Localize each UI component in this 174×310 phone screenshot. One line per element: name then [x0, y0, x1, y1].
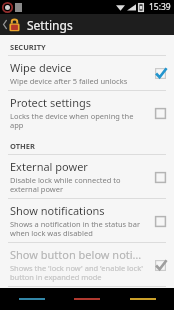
staticText: Shows the 'lock now' and 'enable lock' b… [10, 263, 146, 282]
staticText: Show notifications [10, 203, 105, 218]
staticText: Settings [27, 17, 73, 33]
button[interactable]: Protect settings [0, 91, 174, 134]
button[interactable]: Checked [151, 64, 169, 82]
staticText: Show button below notification [10, 247, 146, 262]
staticText: SECURITY [10, 42, 46, 52]
button[interactable]: External power [0, 155, 174, 198]
button[interactable]: Show button below notification [0, 243, 174, 286]
staticText: Locks the device when opening the app [10, 111, 146, 130]
button[interactable]: Navigate up [0, 14, 22, 35]
staticText: Wipe device after 5 failed unlocks [10, 76, 128, 86]
button[interactable]: Unchecked [151, 212, 169, 230]
staticText: External power [10, 159, 88, 174]
button[interactable]: Show notifications [0, 199, 174, 242]
staticText: Shows a notification in the status bar w… [10, 219, 146, 238]
staticText: OTHER [10, 141, 35, 151]
staticText: Wipe device [10, 60, 72, 75]
button[interactable]: Tab 2 [63, 289, 111, 309]
button[interactable]: Tab 1 [8, 289, 56, 309]
staticText: 15:39 [149, 1, 171, 13]
staticText: Protect settings [10, 95, 92, 110]
button[interactable]: Wipe device [0, 56, 174, 90]
button[interactable]: Tab 3 [119, 289, 167, 309]
button[interactable]: Checked [151, 256, 169, 274]
staticText: Disable lock while connected to external… [10, 175, 146, 194]
button[interactable]: Unchecked [151, 168, 169, 186]
button[interactable]: Unchecked [151, 104, 169, 122]
